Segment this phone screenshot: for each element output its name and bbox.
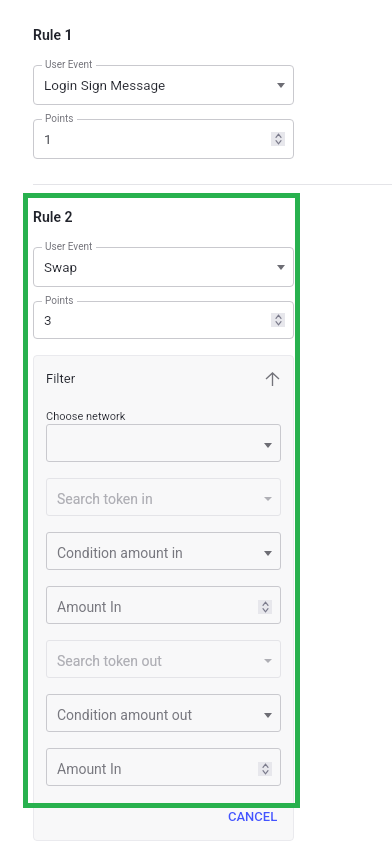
button[interactable]: Search token out (46, 640, 281, 678)
button[interactable]: Condition amount in (46, 532, 281, 570)
button[interactable]: Search token in (46, 478, 281, 516)
button[interactable] (33, 247, 294, 287)
staticText: Search token out (57, 653, 162, 669)
staticText: 1 (44, 131, 52, 147)
staticText: Choose network (46, 410, 126, 423)
other: Collapse filter (262, 369, 282, 389)
button[interactable] (33, 65, 294, 105)
staticText: Points (45, 113, 74, 125)
button[interactable] (33, 119, 294, 159)
button[interactable]: CANCEL (220, 804, 286, 829)
staticText: 3 (44, 312, 52, 328)
staticText: Rule 2 (33, 209, 73, 225)
staticText: Points (45, 295, 74, 307)
staticText: Condition amount in (57, 545, 183, 561)
button[interactable]: Amount In (46, 586, 281, 624)
button[interactable] (46, 424, 281, 462)
staticText: Search token in (57, 491, 153, 507)
staticText: Amount In (57, 761, 122, 777)
button[interactable]: Increment or decrement value (271, 313, 285, 327)
staticText: User Event (45, 241, 93, 253)
staticText: Amount In (57, 599, 122, 615)
button[interactable]: Increment or decrement value (258, 762, 272, 776)
staticText: Filter (46, 371, 76, 386)
staticText: CANCEL (228, 809, 278, 824)
button[interactable]: Increment or decrement value (271, 132, 285, 146)
button[interactable]: Amount In (46, 748, 281, 786)
button[interactable] (33, 301, 294, 339)
button[interactable]: Increment or decrement value (258, 600, 272, 614)
staticText: Swap (44, 259, 78, 275)
button[interactable]: Condition amount out (46, 694, 281, 732)
staticText: User Event (45, 59, 93, 71)
button[interactable]: Filter (46, 368, 281, 388)
staticText: Login Sign Message (44, 77, 166, 93)
staticText: Rule 1 (33, 27, 73, 43)
staticText: Condition amount out (57, 707, 192, 723)
